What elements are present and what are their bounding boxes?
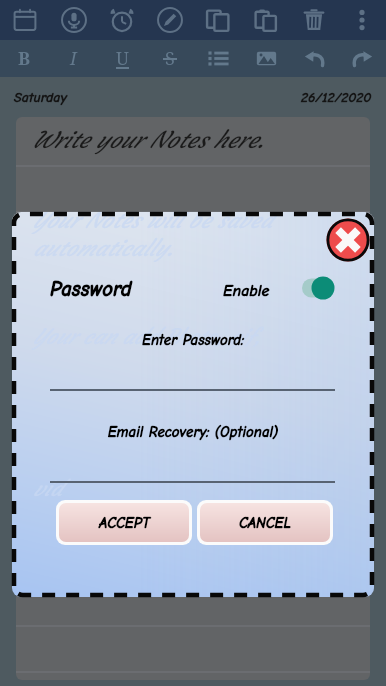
staticText: Enable <box>223 282 270 300</box>
button[interactable]: Calendar <box>0 0 49 40</box>
staticText: vid <box>33 477 62 503</box>
staticText: Write your Notes here. <box>32 126 264 155</box>
staticText: I <box>70 46 77 71</box>
staticText: automatically. <box>33 237 173 265</box>
staticText: Email Recovery: (Optional) <box>12 423 374 440</box>
button[interactable]: Voice note <box>49 0 98 40</box>
button[interactable]: Undo <box>290 40 338 77</box>
staticText: Your Notes will be saved <box>33 212 272 235</box>
button[interactable]: Paste <box>242 0 290 40</box>
button[interactable]: U <box>98 40 146 77</box>
button[interactable]: Redo <box>338 40 386 77</box>
staticText: U <box>116 46 129 71</box>
button[interactable]: S <box>146 40 194 77</box>
staticText: Your can add Photo, gif, <box>33 323 261 349</box>
button[interactable]: CANCEL <box>200 503 330 542</box>
button[interactable]: More options <box>338 0 386 40</box>
staticText: 26/12/2020 <box>301 89 372 105</box>
staticText: Your can add Photo, gif, <box>33 325 261 351</box>
button[interactable]: Bulleted list <box>194 40 242 77</box>
staticText: ACCEPT <box>99 514 150 531</box>
staticText: vid <box>33 475 62 501</box>
staticText: CANCEL <box>239 514 291 531</box>
button[interactable]: Enable password <box>300 275 340 301</box>
button[interactable]: I <box>49 40 98 77</box>
button[interactable]: B <box>0 40 49 77</box>
staticText: B <box>18 46 31 71</box>
button[interactable]: Close <box>323 215 373 265</box>
staticText: Saturday <box>14 89 67 105</box>
button[interactable]: Delete <box>290 0 338 40</box>
button[interactable]: Copy <box>194 0 242 40</box>
staticText: automatically. <box>33 235 173 263</box>
staticText: S <box>165 46 175 71</box>
button[interactable]: Draw <box>146 0 194 40</box>
staticText: Enter Password: <box>12 331 374 348</box>
button[interactable]: ACCEPT <box>59 503 189 542</box>
button[interactable]: Insert image <box>242 40 290 77</box>
staticText: Password <box>50 277 132 301</box>
button[interactable]: Reminder <box>98 0 146 40</box>
staticText: Your Notes will be saved <box>33 209 272 237</box>
